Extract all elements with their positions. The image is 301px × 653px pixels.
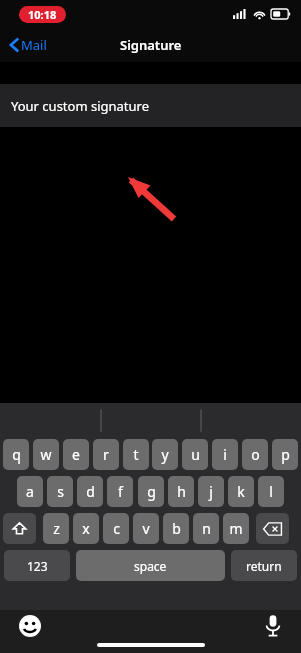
- staticText: m: [229, 519, 243, 538]
- button[interactable]: q: [3, 439, 29, 470]
- staticText: u: [191, 445, 200, 464]
- button[interactable]: r: [93, 439, 119, 470]
- staticText: b: [172, 519, 181, 538]
- staticText: a: [26, 482, 34, 501]
- staticText: h: [177, 482, 186, 501]
- button[interactable]: space: [76, 550, 225, 581]
- staticText: j: [209, 482, 213, 501]
- button[interactable]: a: [17, 476, 43, 507]
- button[interactable]: Shift: [3, 513, 36, 544]
- staticText: k: [237, 482, 245, 501]
- staticText: Your custom signature: [11, 97, 150, 115]
- button[interactable]: m: [223, 513, 249, 544]
- button[interactable]: d: [77, 476, 103, 507]
- staticText: g: [147, 482, 156, 501]
- button[interactable]: p: [272, 439, 298, 470]
- staticText: d: [86, 482, 95, 501]
- button[interactable]: Dictate: [263, 614, 283, 638]
- staticText: n: [202, 519, 211, 538]
- staticText: Signature: [120, 36, 182, 54]
- staticText: v: [142, 519, 150, 538]
- staticText: space: [134, 558, 167, 574]
- staticText: t: [133, 445, 139, 464]
- staticText: l: [269, 482, 273, 501]
- button[interactable]: v: [133, 513, 159, 544]
- staticText: e: [72, 445, 80, 464]
- button[interactable]: y: [152, 439, 178, 470]
- staticText: x: [82, 519, 90, 538]
- button[interactable]: Emoji: [19, 615, 41, 637]
- button[interactable]: f: [107, 476, 133, 507]
- staticText: 10:18: [28, 7, 57, 22]
- staticText: 123: [27, 558, 48, 574]
- button[interactable]: k: [228, 476, 254, 507]
- button[interactable]: o: [242, 439, 268, 470]
- button[interactable]: h: [168, 476, 194, 507]
- staticText: w: [40, 445, 52, 464]
- staticText: r: [103, 445, 109, 464]
- staticText: p: [281, 445, 290, 464]
- staticText: y: [161, 445, 169, 464]
- button[interactable]: e: [63, 439, 89, 470]
- staticText: s: [57, 482, 64, 501]
- button[interactable]: return: [231, 550, 297, 581]
- staticText: return: [246, 558, 282, 574]
- staticText: o: [251, 445, 260, 464]
- staticText: i: [223, 445, 227, 464]
- button[interactable]: t: [123, 439, 149, 470]
- staticText: Mail: [21, 36, 47, 54]
- button[interactable]: Your custom signature: [0, 84, 301, 127]
- button[interactable]: Backspace: [256, 513, 289, 544]
- button[interactable]: b: [163, 513, 189, 544]
- button[interactable]: Mail: [0, 32, 55, 58]
- staticText: z: [53, 519, 60, 538]
- button[interactable]: x: [73, 513, 99, 544]
- button[interactable]: c: [103, 513, 129, 544]
- staticText: q: [12, 445, 21, 464]
- button[interactable]: i: [212, 439, 238, 470]
- button[interactable]: j: [198, 476, 224, 507]
- staticText: f: [118, 482, 123, 501]
- staticText: c: [113, 519, 120, 538]
- button[interactable]: l: [258, 476, 284, 507]
- button[interactable]: w: [33, 439, 59, 470]
- button[interactable]: z: [43, 513, 69, 544]
- button[interactable]: g: [138, 476, 164, 507]
- button[interactable]: n: [193, 513, 219, 544]
- button[interactable]: s: [47, 476, 73, 507]
- button[interactable]: 123: [4, 550, 70, 581]
- button[interactable]: u: [182, 439, 208, 470]
